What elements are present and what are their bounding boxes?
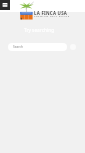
button[interactable]: Menu bbox=[0, 0, 10, 10]
button[interactable]: Search bbox=[8, 43, 67, 51]
staticText: PREMIUM REAL ESTATE bbox=[34, 14, 70, 17]
staticText: LA FINCA USA bbox=[34, 10, 68, 16]
staticText: Search bbox=[13, 45, 24, 49]
staticText: Try searching bbox=[24, 27, 55, 34]
